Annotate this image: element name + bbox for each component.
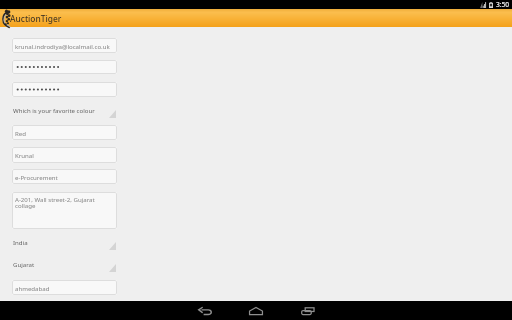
button[interactable] — [12, 82, 117, 97]
button[interactable]: Gujarat — [12, 259, 117, 272]
button[interactable]: Which is your favorite colour — [12, 105, 117, 118]
button[interactable]: Recent apps — [295, 301, 321, 320]
staticText: Krunal — [15, 151, 34, 159]
button[interactable]: A-201, Wall street-2, Gujarat collage — [12, 192, 117, 229]
button[interactable]: krunal.indrodiya@localmail.co.uk — [12, 38, 117, 53]
button[interactable]: ahmedabad — [12, 280, 117, 295]
button[interactable] — [12, 60, 117, 74]
button[interactable]: Home — [243, 301, 269, 320]
staticText: A-201, Wall street-2, Gujarat collage — [15, 195, 95, 210]
staticText: AuctionTiger — [10, 13, 62, 24]
button[interactable]: Red — [12, 125, 117, 140]
staticText: India — [13, 238, 28, 246]
button[interactable]: India — [12, 237, 117, 250]
button[interactable]: Back — [192, 301, 218, 320]
staticText: ahmedabad — [15, 284, 50, 292]
staticText: 3:50 — [496, 0, 510, 9]
button[interactable]: Krunal — [12, 147, 117, 163]
button[interactable]: e-Procurement — [12, 169, 117, 184]
staticText: Which is your favorite colour — [13, 106, 95, 114]
staticText: krunal.indrodiya@localmail.co.uk — [15, 42, 110, 50]
staticText: Red — [15, 129, 26, 137]
staticText: Gujarat — [13, 260, 35, 268]
staticText: e-Procurement — [15, 173, 58, 181]
